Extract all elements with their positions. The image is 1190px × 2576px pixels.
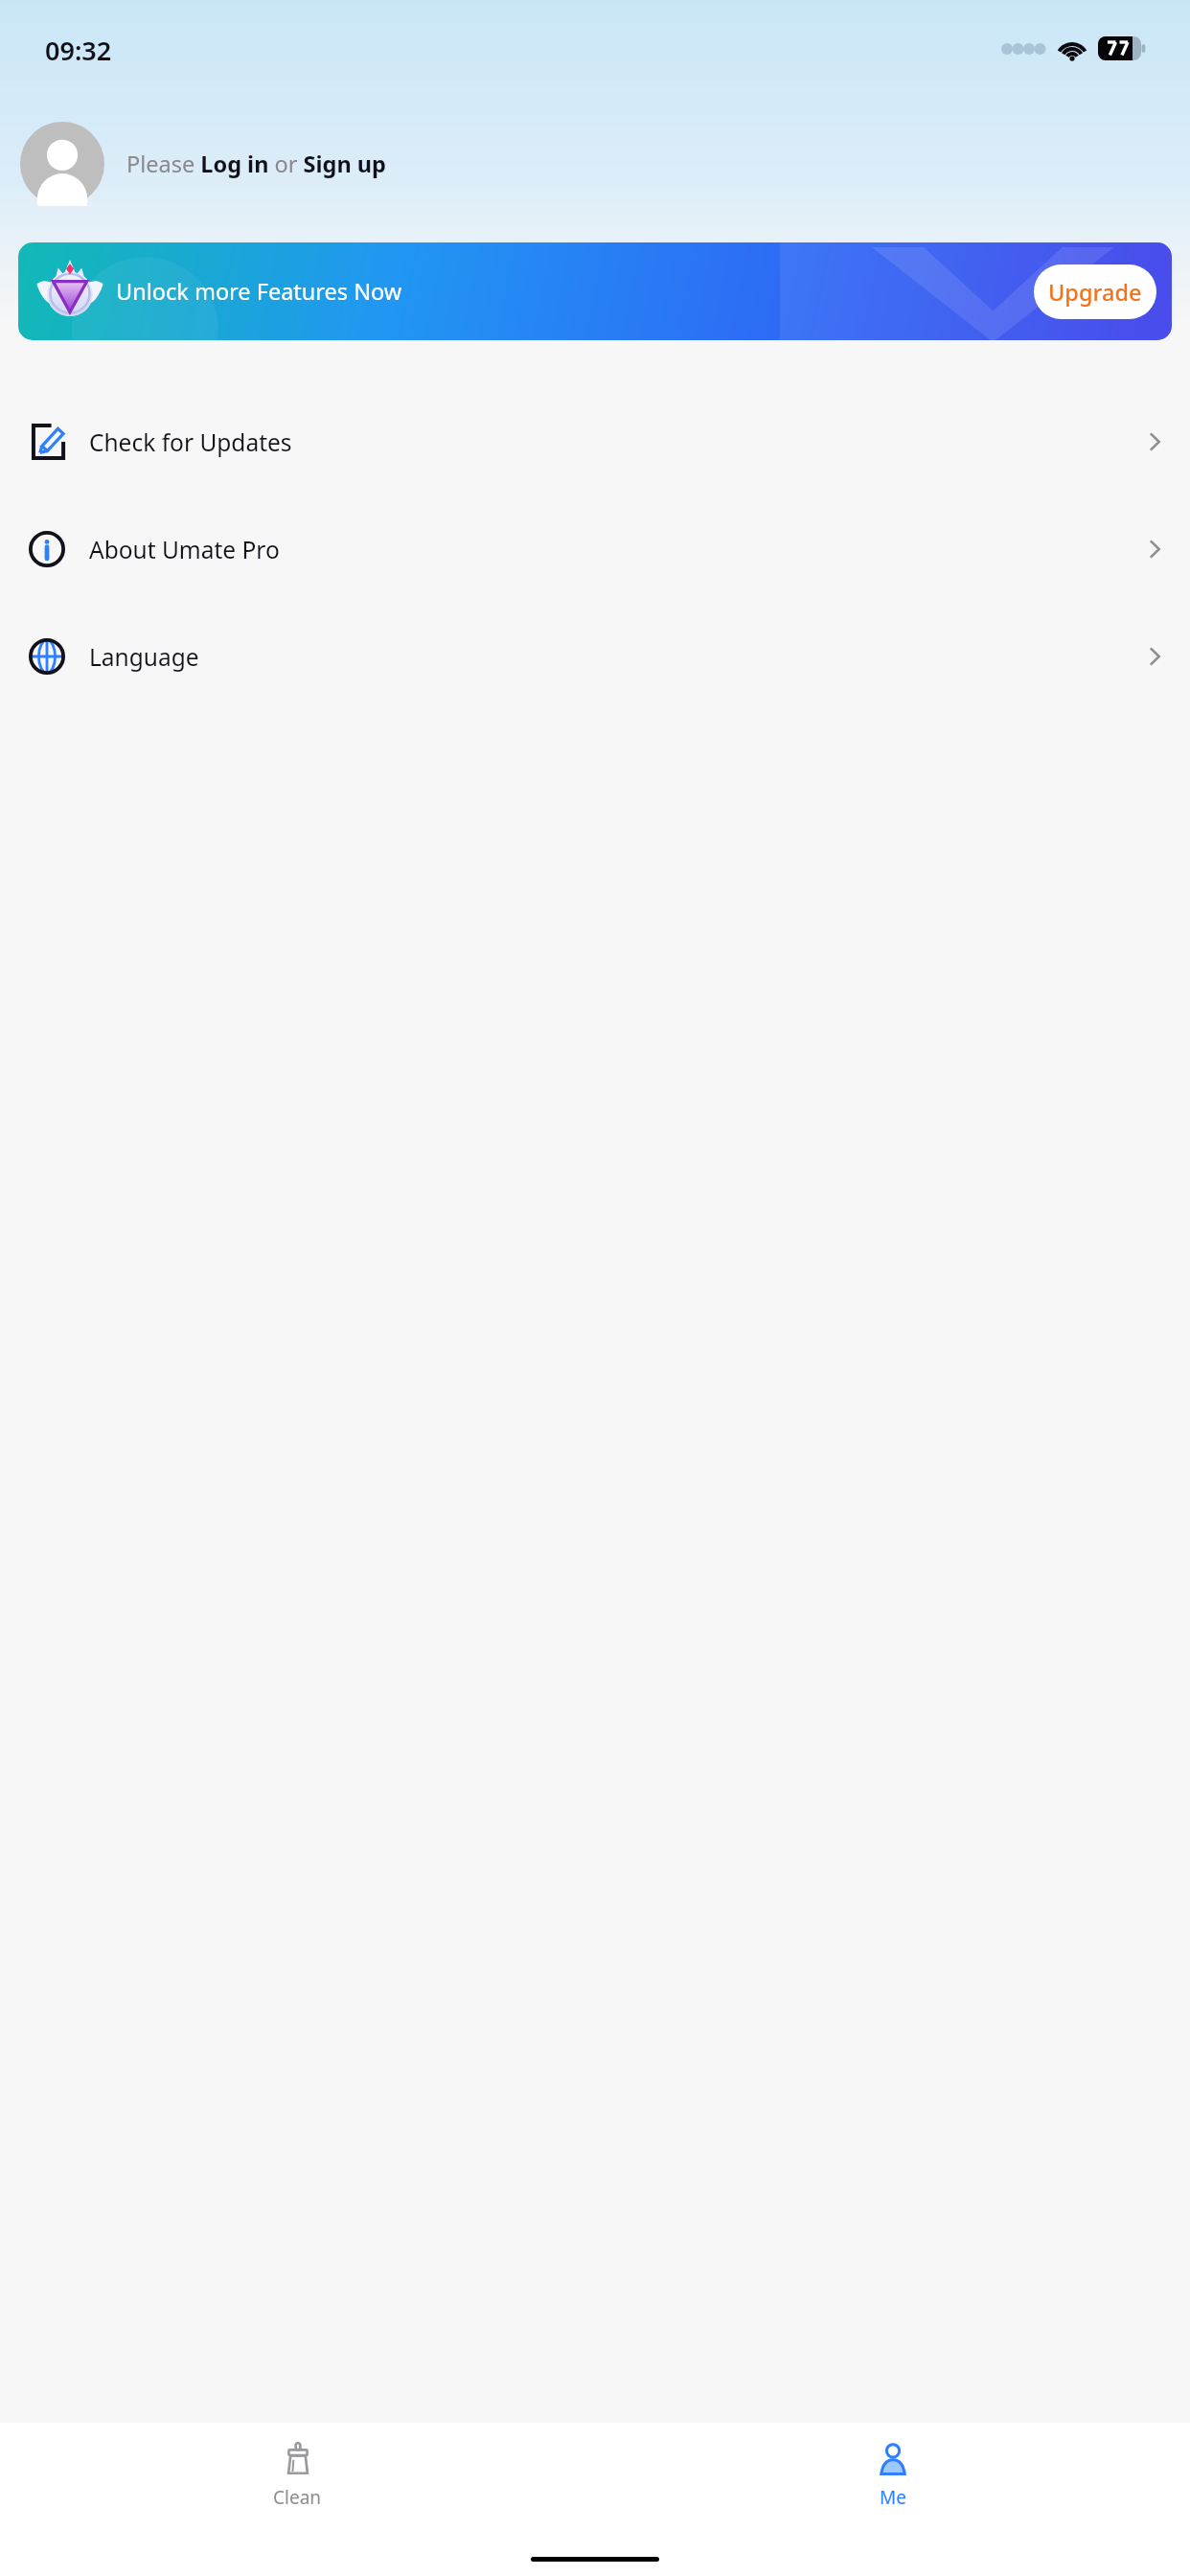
- button[interactable]: Clean: [0, 2423, 595, 2510]
- staticText: Language: [89, 641, 199, 673]
- other: Language: [29, 638, 65, 675]
- staticText: 09:32: [45, 33, 112, 68]
- staticText: Upgrade: [1048, 277, 1142, 308]
- button[interactable]: Premium: [18, 242, 1172, 340]
- other: Clean: [281, 2442, 315, 2476]
- button[interactable]: Upgrade: [1034, 264, 1156, 319]
- button[interactable]: Profile: [0, 92, 1190, 236]
- staticText: Me: [880, 2485, 906, 2510]
- staticText: About Umate Pro: [89, 534, 280, 565]
- staticText: Check for Updates: [89, 426, 292, 458]
- staticText: Please Log in or Sign up: [126, 149, 386, 179]
- button[interactable]: Me: [595, 2423, 1190, 2510]
- other: Premium: [35, 257, 104, 326]
- button[interactable]: About Umate Pro: [0, 495, 1190, 603]
- other: Wi-Fi: [1057, 37, 1087, 60]
- staticText: Unlock more Features Now: [116, 276, 402, 307]
- other: Signal: [1001, 43, 1045, 55]
- other: Check for Updates: [29, 424, 65, 460]
- button[interactable]: Check for Updates: [0, 388, 1190, 495]
- other: Profile: [20, 122, 104, 206]
- other: Me: [876, 2442, 910, 2476]
- button[interactable]: Language: [0, 603, 1190, 710]
- other: About Umate Pro: [29, 531, 65, 567]
- other: Battery 77 percent: [1098, 36, 1146, 60]
- staticText: Clean: [273, 2485, 322, 2510]
